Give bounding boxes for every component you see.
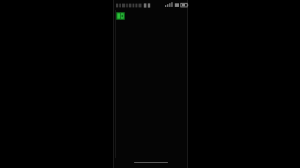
button[interactable]: App badge bbox=[116, 12, 125, 20]
